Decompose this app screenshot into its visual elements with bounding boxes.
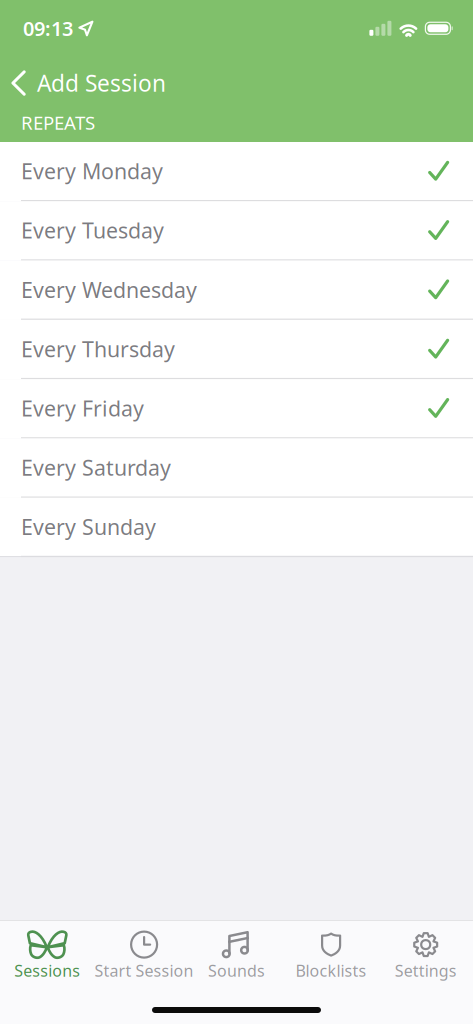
- button[interactable]: Sessions: [0, 921, 95, 1009]
- staticText: REPEATS: [21, 110, 95, 135]
- staticText: Settings: [395, 960, 457, 981]
- button[interactable]: Sounds: [189, 921, 284, 1009]
- staticText: Add Session: [37, 68, 166, 98]
- button[interactable]: Every Friday: [0, 379, 473, 438]
- staticText: Every Friday: [21, 394, 144, 422]
- staticText: Every Saturday: [21, 453, 171, 482]
- button[interactable]: Every Tuesday: [0, 201, 473, 261]
- staticText: Sounds: [208, 960, 265, 981]
- staticText: Every Thursday: [21, 335, 175, 363]
- staticText: Every Monday: [21, 157, 163, 185]
- staticText: Every Tuesday: [21, 216, 164, 244]
- button[interactable]: Every Thursday: [0, 320, 473, 379]
- button[interactable]: Start Session: [95, 921, 189, 1009]
- button[interactable]: Blocklists: [284, 921, 378, 1009]
- button[interactable]: Back: [0, 51, 166, 101]
- button[interactable]: Every Sunday: [0, 498, 473, 557]
- button[interactable]: Settings: [378, 921, 473, 1009]
- staticText: Every Wednesday: [21, 275, 197, 304]
- button[interactable]: Every Monday: [0, 142, 473, 201]
- staticText: Blocklists: [296, 960, 367, 981]
- staticText: Every Sunday: [21, 513, 156, 541]
- staticText: Start Session: [95, 960, 194, 981]
- button[interactable]: Every Wednesday: [0, 261, 473, 320]
- staticText: 09:13: [23, 15, 73, 42]
- button[interactable]: Every Saturday: [0, 438, 473, 498]
- staticText: Sessions: [14, 960, 80, 981]
